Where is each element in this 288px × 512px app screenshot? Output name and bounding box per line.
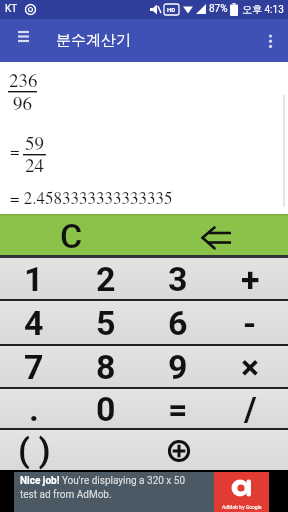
staticText: 7 [24, 347, 44, 387]
staticText: / [244, 389, 257, 428]
button[interactable]: 2 [72, 258, 144, 299]
button[interactable]: 6 [144, 301, 216, 344]
staticText: 6 [168, 303, 188, 343]
staticText: . [29, 389, 39, 428]
button[interactable]: - [216, 301, 288, 344]
staticText: 오후 4:13 [242, 3, 284, 16]
staticText: 1 [24, 259, 44, 299]
staticText: 4 [24, 303, 44, 343]
staticText: ( ) [18, 430, 51, 470]
staticText: 24 [25, 152, 45, 177]
staticText: = [10, 139, 20, 162]
button[interactable]: = [144, 389, 216, 428]
button[interactable]: 9 [144, 346, 216, 387]
button[interactable]: Nice job! You're displaying a 320 x 50 t… [0, 470, 288, 512]
staticText: 96 [13, 90, 33, 115]
button[interactable] [144, 214, 288, 255]
staticText: KT [5, 3, 18, 15]
staticText: 9 [168, 347, 188, 387]
staticText: - [243, 303, 257, 343]
staticText: 236 [9, 67, 38, 92]
button[interactable] [258, 29, 284, 55]
button[interactable]: 1 [0, 258, 72, 299]
staticText: AdMob by Google [222, 504, 262, 510]
button[interactable] [10, 29, 38, 53]
button[interactable]: × [216, 346, 288, 387]
staticText: 3 [168, 259, 188, 299]
button[interactable]: 7 [0, 346, 72, 387]
button[interactable]: 5 [72, 301, 144, 344]
button[interactable]: C [0, 214, 144, 255]
staticText: 2 [96, 259, 116, 299]
button[interactable]: / [216, 389, 288, 428]
staticText: 87% [209, 3, 228, 15]
staticText: Nice job! You're displaying a 320 x 50 t… [20, 475, 214, 500]
staticText: 0 [96, 389, 116, 428]
button[interactable]: 8 [72, 346, 144, 387]
button[interactable]: ( ) [0, 430, 72, 470]
button[interactable]: . [0, 389, 72, 428]
staticText: = [168, 389, 188, 428]
staticText: = 2.4583333333333335 [10, 186, 173, 209]
staticText: 5 [96, 303, 116, 343]
button[interactable]: 3 [144, 258, 216, 299]
staticText: HD [167, 6, 176, 13]
staticText: + [241, 259, 260, 299]
staticText: C [60, 216, 83, 256]
staticText: × [241, 347, 260, 387]
button[interactable]: 0 [72, 389, 144, 428]
button[interactable]: 4 [0, 301, 72, 344]
button[interactable] [144, 430, 216, 470]
staticText: 8 [96, 347, 116, 387]
staticText: 59 [25, 130, 45, 155]
button[interactable]: + [216, 258, 288, 299]
staticText: 분수계산기 [56, 31, 131, 50]
